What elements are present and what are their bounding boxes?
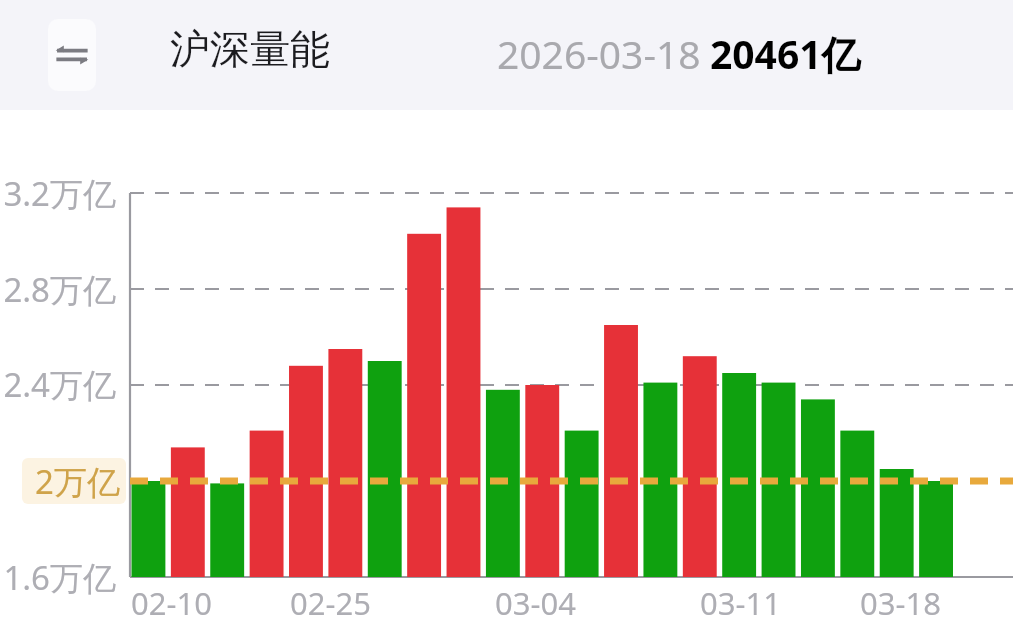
staticText: 02-25 [290,582,371,620]
button[interactable] [0,0,1013,620]
button[interactable]: Switch series [48,19,96,91]
staticText: 3.2万亿 [3,171,116,216]
staticText: 2万亿 [35,459,120,504]
staticText: 03-04 [495,582,576,620]
staticText: 03-18 [860,582,941,620]
staticText: 2026-03-18 [497,27,701,80]
staticText: 20461亿 [710,27,861,80]
staticText: 02-10 [131,582,212,620]
staticText: 03-11 [700,582,781,620]
staticText: 1.6万亿 [3,555,116,600]
staticText: 2.8万亿 [3,267,116,312]
staticText: 2.4万亿 [3,362,116,407]
staticText: 沪深量能 [170,24,330,74]
